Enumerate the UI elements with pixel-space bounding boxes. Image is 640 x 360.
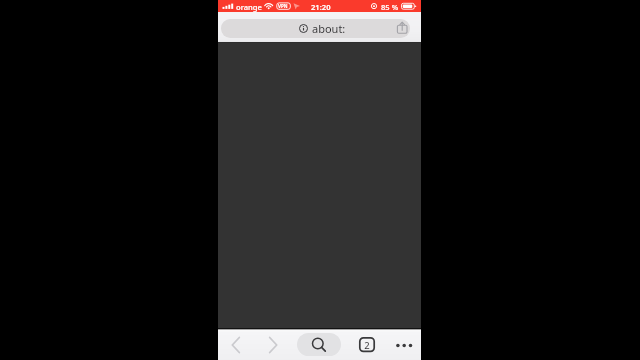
staticText: 2 <box>364 339 370 352</box>
staticText: VPN <box>278 3 288 9</box>
staticText: 21:20 <box>311 2 331 12</box>
staticText: 85 % <box>381 2 399 12</box>
button[interactable]: Share <box>395 15 411 31</box>
button[interactable]: Forward <box>263 335 283 355</box>
button[interactable]: Tabs <box>359 337 375 353</box>
button[interactable]: Search <box>297 333 341 356</box>
button[interactable]: about: <box>221 19 410 38</box>
staticText: orange <box>236 2 262 12</box>
button[interactable]: More <box>396 337 412 353</box>
button[interactable]: Back <box>226 335 246 355</box>
staticText: about: <box>312 21 346 36</box>
